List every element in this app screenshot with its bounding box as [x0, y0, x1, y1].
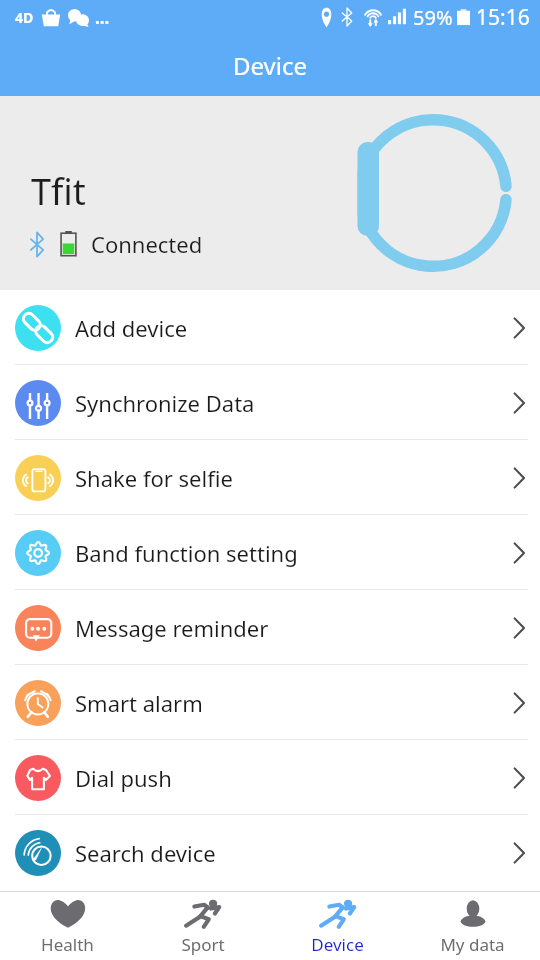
staticText: Add device: [75, 313, 188, 343]
staticText: Band function setting: [75, 538, 298, 568]
button[interactable]: Band function setting: [0, 515, 540, 590]
staticText: 15:16: [476, 3, 530, 32]
staticText: My data: [440, 933, 505, 956]
staticText: Connected: [91, 229, 203, 259]
staticText: Synchronize Data: [75, 388, 255, 418]
staticText: Device: [311, 933, 364, 956]
staticText: Message reminder: [75, 613, 269, 643]
button[interactable]: Add device: [0, 290, 540, 365]
staticText: Health: [41, 933, 94, 956]
button[interactable]: My data: [405, 892, 540, 960]
staticText: Sport: [181, 933, 225, 956]
staticText: Shake for selfie: [75, 463, 233, 493]
button[interactable]: Dial push: [0, 740, 540, 815]
button[interactable]: Search device: [0, 815, 540, 890]
button[interactable]: Health: [0, 892, 135, 960]
staticText: Search device: [75, 838, 216, 868]
staticText: Device: [233, 49, 308, 82]
button[interactable]: Synchronize Data: [0, 365, 540, 440]
staticText: 59%: [413, 4, 453, 31]
button[interactable]: Device: [270, 892, 405, 960]
staticText: Dial push: [75, 763, 172, 793]
staticText: Smart alarm: [75, 688, 203, 718]
button[interactable]: Message reminder: [0, 590, 540, 665]
button[interactable]: Shake for selfie: [0, 440, 540, 515]
staticText: Tfit: [31, 167, 86, 216]
button[interactable]: Sport: [135, 892, 270, 960]
staticText: ...: [95, 6, 110, 29]
staticText: 4D: [15, 8, 34, 27]
button[interactable]: Smart alarm: [0, 665, 540, 740]
